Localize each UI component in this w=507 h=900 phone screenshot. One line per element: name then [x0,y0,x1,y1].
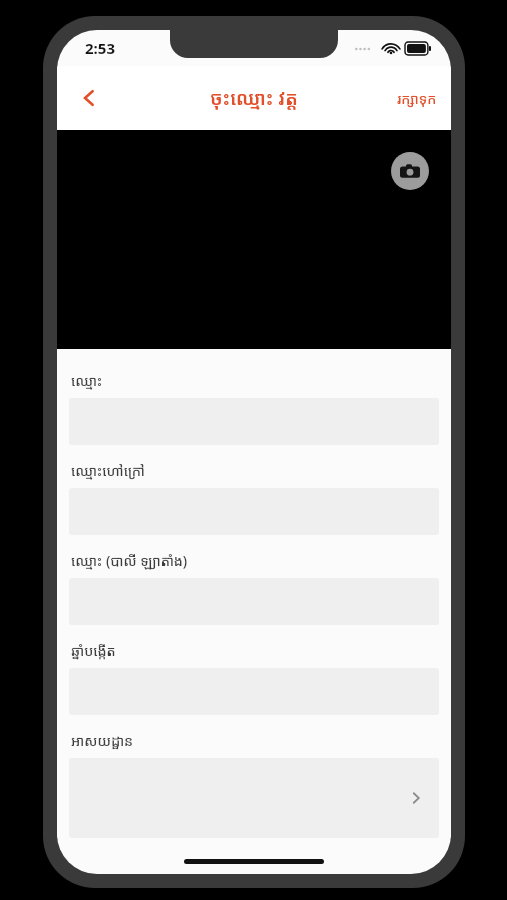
staticText: ឆ្នាំបង្កើត [71,641,116,660]
other: Choose address [409,791,423,805]
staticText: 2:53 [85,38,115,58]
button[interactable]: រក្សាទុក [383,79,451,118]
button[interactable]: Back [65,74,113,122]
staticText: អាសយដ្ឋាន [71,731,134,750]
staticText: រក្សាទុក [397,89,437,108]
staticText: ចុះឈ្មោះ វត្ត [210,85,298,111]
staticText: ឈ្មោះ [71,371,103,390]
button[interactable]: Take photo [391,152,429,190]
staticText: ឈ្មោះហៅក្រៅ [71,461,145,480]
staticText: ឈ្មោះ (បាលី ឡ្យាតាំង) [71,551,188,570]
